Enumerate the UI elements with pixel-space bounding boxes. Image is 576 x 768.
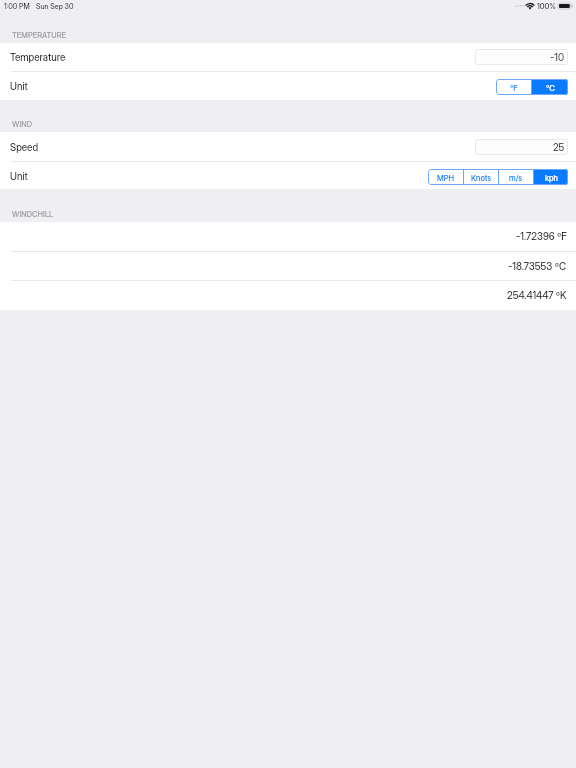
button[interactable]: 25	[475, 139, 568, 155]
staticText: TEMPERATURE	[12, 31, 67, 40]
staticText: 254.41447 ºK	[507, 289, 567, 301]
button[interactable]: MPH	[428, 169, 463, 185]
button[interactable]: kph	[534, 169, 568, 185]
other: Wi-Fi	[526, 0, 534, 12]
staticText: Speed	[10, 142, 39, 154]
staticText: m/s	[509, 173, 523, 182]
button[interactable]: Unit	[0, 162, 576, 189]
other: Battery full	[558, 0, 573, 12]
staticText: Unit	[10, 171, 28, 183]
staticText: 1:00 PM	[4, 2, 30, 11]
staticText: -1.72396 ºF	[516, 230, 567, 242]
button[interactable]: Unit	[0, 72, 576, 100]
button[interactable]: -18.73553 ºC	[0, 252, 576, 280]
staticText: °C	[546, 83, 555, 92]
button[interactable]: Temperature	[0, 43, 576, 71]
button[interactable]: m/s	[499, 169, 533, 185]
button[interactable]: Speed	[0, 132, 576, 161]
button[interactable]: °F	[496, 79, 531, 95]
staticText: WIND	[12, 120, 33, 129]
staticText: -18.73553 ºC	[508, 260, 567, 272]
staticText: kph	[545, 173, 558, 182]
other: Cellular signal	[514, 0, 524, 12]
staticText: Temperature	[10, 52, 66, 64]
staticText: °F	[510, 83, 518, 92]
staticText: -10	[550, 52, 565, 64]
staticText: MPH	[437, 173, 455, 182]
staticText: Sun Sep 30	[36, 2, 74, 11]
button[interactable]: Knots	[464, 169, 498, 185]
staticText: WINDCHILL	[12, 210, 54, 219]
staticText: 25	[553, 142, 565, 154]
button[interactable]: -1.72396 ºF	[0, 222, 576, 251]
button[interactable]: 254.41447 ºK	[0, 281, 576, 310]
staticText: Unit	[10, 81, 28, 93]
staticText: Knots	[471, 173, 492, 182]
staticText: 100%	[537, 2, 556, 11]
button[interactable]: -10	[475, 49, 568, 65]
button[interactable]: °C	[532, 79, 568, 95]
